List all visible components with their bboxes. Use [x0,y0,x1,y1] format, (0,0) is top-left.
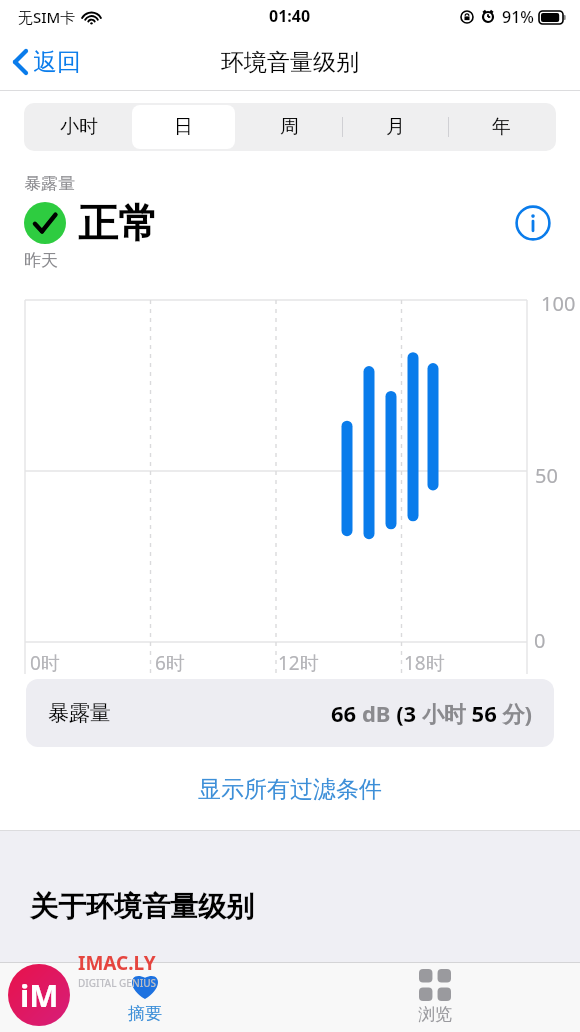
staticText: 摘要 [128,1003,162,1024]
staticText: 浏览 [418,1004,452,1025]
staticText: 小时 [60,115,98,139]
staticText: IMAC.LY [78,950,156,976]
staticText: 月 [386,115,405,139]
button[interactable]: 周 [236,105,342,149]
staticText: 18时 [404,650,445,676]
staticText: 周 [280,115,299,139]
staticText: 0 [534,627,546,654]
button[interactable]: 信息 [510,200,556,246]
staticText: 环境音量级别 [221,48,359,77]
staticText: 暴露量 [24,173,75,194]
staticText: 91% [502,6,534,28]
button[interactable]: 小时 [26,105,131,149]
button[interactable]: 返回 [0,41,93,83]
staticText: 0时 [30,650,60,676]
button[interactable]: 月 [342,105,448,149]
staticText: 01:40 [269,5,311,27]
button[interactable]: 日 [131,105,236,149]
staticText: 100 [541,290,576,317]
staticText: 暴露量 [48,700,111,726]
staticText: 日 [174,115,193,139]
button[interactable]: 显示所有过滤条件 [182,769,398,810]
staticText: 年 [492,115,511,139]
staticText: 12时 [278,650,319,676]
staticText: 66 dB (3 小时 56 分) [331,698,532,728]
button[interactable]: 年 [448,105,554,149]
staticText: 显示所有过滤条件 [198,775,382,804]
staticText: 正常 [78,198,158,248]
staticText: 50 [535,462,558,489]
button[interactable]: 暴露量 [26,679,554,747]
staticText: DIGITAL GENIUS [78,976,157,990]
staticText: 无SIM卡 [18,7,76,27]
staticText: 6时 [155,650,185,676]
button[interactable]: 摘要 [0,962,290,1032]
staticText: 返回 [33,47,81,77]
staticText: iM [20,974,59,1016]
staticText: 关于环境音量级别 [30,889,254,924]
staticText: 昨天 [24,250,58,271]
button[interactable]: 浏览 [290,962,580,1032]
